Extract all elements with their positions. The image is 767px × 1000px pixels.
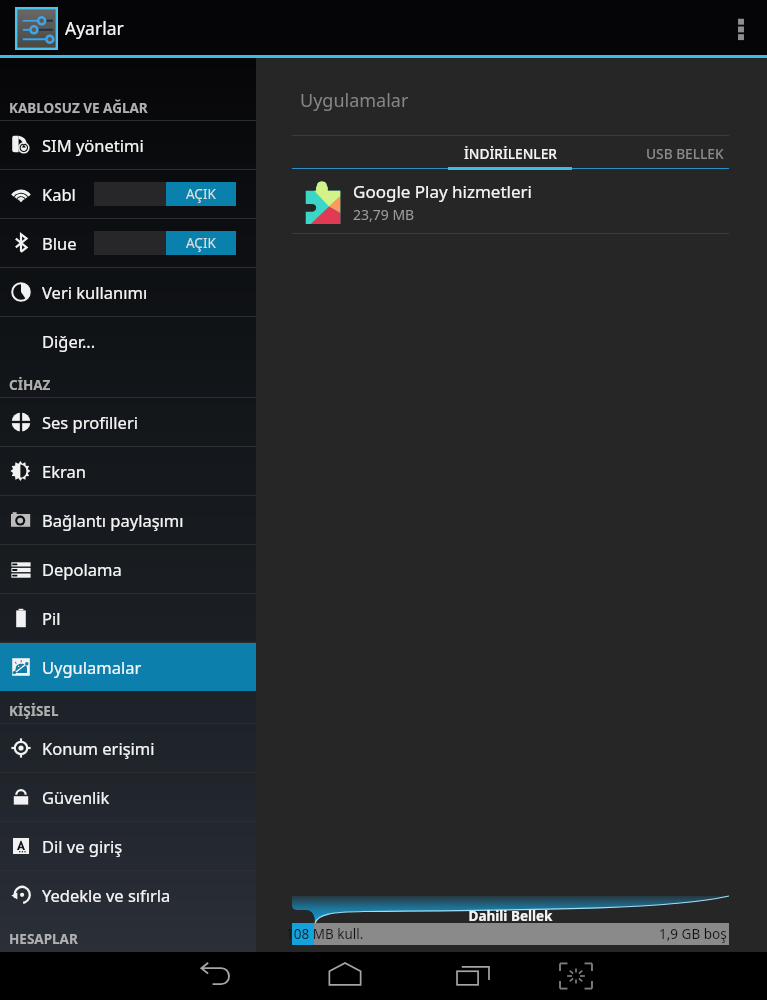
- staticText: Bağlantı paylaşımı: [42, 509, 184, 531]
- staticText: İNDİRİLENLER: [464, 144, 557, 163]
- staticText: Blue: [42, 232, 77, 254]
- button[interactable]: Veri kullanımı: [0, 268, 256, 316]
- button[interactable]: AÇIK: [94, 231, 236, 255]
- staticText: Güvenlik: [42, 786, 110, 808]
- staticText: USB BELLEK: [646, 144, 724, 163]
- button[interactable]: Güvenlik: [0, 773, 256, 821]
- staticText: KİŞİSEL: [9, 702, 59, 720]
- staticText: Depolama: [42, 558, 122, 580]
- staticText: HESAPLAR: [9, 930, 78, 948]
- button[interactable]: More options: [715, 0, 767, 55]
- button[interactable]: Depolama: [0, 545, 256, 593]
- button[interactable]: Back: [185, 952, 249, 1000]
- button[interactable]: Blue: [0, 219, 256, 267]
- staticText: Ses profilleri: [42, 411, 138, 433]
- staticText: CİHAZ: [9, 376, 51, 394]
- button[interactable]: Settings: [14, 6, 58, 50]
- staticText: Diğer...: [42, 330, 96, 352]
- button[interactable]: İNDİRİLENLER: [448, 136, 572, 167]
- staticText: Uygulamalar: [42, 656, 142, 678]
- staticText: Dahili Bellek: [292, 907, 729, 925]
- staticText: Google Play hizmetleri: [353, 180, 532, 203]
- staticText: 23,79 MB: [353, 205, 415, 224]
- staticText: Veri kullanımı: [42, 281, 148, 303]
- button[interactable]: Yedekle ve sıfırla: [0, 871, 256, 919]
- staticText: 1,9 GB boş: [659, 925, 727, 943]
- button[interactable]: Uygulamalar: [0, 643, 256, 691]
- button[interactable]: Ekran: [0, 447, 256, 495]
- staticText: 108 MB kull.: [286, 925, 364, 943]
- button[interactable]: SIM yönetimi: [0, 121, 256, 169]
- staticText: SIM yönetimi: [42, 134, 144, 156]
- button[interactable]: Google Play hizmetleri: [292, 170, 729, 233]
- button[interactable]: Pil: [0, 594, 256, 642]
- staticText: AÇIK: [186, 185, 216, 203]
- staticText: Kabl: [42, 183, 76, 205]
- staticText: Konum erişimi: [42, 737, 155, 759]
- button[interactable]: Bağlantı paylaşımı: [0, 496, 256, 544]
- button[interactable]: Kabl: [0, 170, 256, 218]
- button[interactable]: Home: [313, 952, 377, 1000]
- button[interactable]: USB BELLEK: [641, 136, 729, 167]
- button[interactable]: Recent apps: [441, 952, 505, 1000]
- staticText: KABLOSUZ VE AĞLAR: [9, 99, 148, 117]
- button[interactable]: AÇIK: [94, 182, 236, 206]
- button[interactable]: Konum erişimi: [0, 724, 256, 772]
- staticText: Uygulamalar: [300, 88, 409, 113]
- button[interactable]: Ses profilleri: [0, 398, 256, 446]
- button[interactable]: Screenshot: [544, 952, 608, 1000]
- button[interactable]: Diğer...: [0, 317, 256, 365]
- staticText: Pil: [42, 607, 61, 629]
- staticText: Dil ve giriş: [42, 835, 123, 857]
- staticText: Ekran: [42, 460, 86, 482]
- staticText: Ayarlar: [65, 16, 124, 40]
- button[interactable]: Dil ve giriş: [0, 822, 256, 870]
- staticText: AÇIK: [186, 234, 216, 252]
- staticText: Yedekle ve sıfırla: [42, 884, 171, 906]
